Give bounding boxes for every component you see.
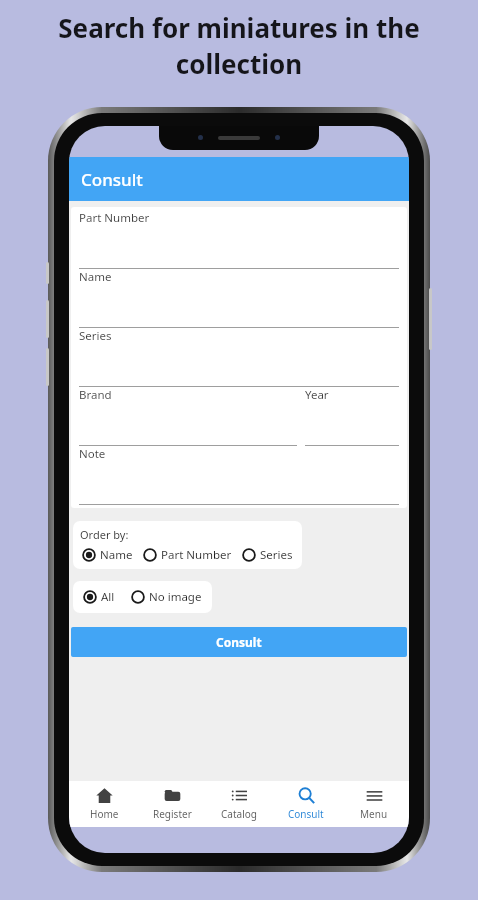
staticText: Home xyxy=(90,807,119,821)
button[interactable]: Catalog xyxy=(207,783,271,825)
staticText: Part Number xyxy=(161,547,232,563)
staticText: Name xyxy=(100,547,133,563)
button[interactable]: Menu xyxy=(342,783,406,825)
staticText: All xyxy=(101,589,115,605)
staticText: Menu xyxy=(360,807,388,821)
staticText: Catalog xyxy=(221,807,257,821)
staticText: Year xyxy=(305,387,329,403)
button[interactable]: Consult xyxy=(274,783,338,825)
staticText: Consult xyxy=(288,807,324,821)
button[interactable]: Register xyxy=(140,783,204,825)
button[interactable]: Part Number xyxy=(141,547,234,563)
staticText: Part Number xyxy=(79,210,150,226)
button[interactable]: No image xyxy=(129,589,204,605)
staticText: Note xyxy=(79,446,106,462)
staticText: Search for miniatures in the collection xyxy=(24,10,454,82)
button[interactable]: All xyxy=(81,589,117,605)
staticText: Series xyxy=(260,547,293,563)
staticText: Order by: xyxy=(80,527,129,542)
staticText: No image xyxy=(149,589,202,605)
staticText: Name xyxy=(79,269,112,285)
staticText: Consult xyxy=(216,634,262,650)
staticText: Consult xyxy=(81,168,143,191)
button[interactable]: Series xyxy=(240,547,295,563)
staticText: Brand xyxy=(79,387,112,403)
button[interactable]: Name xyxy=(80,547,135,563)
staticText: Register xyxy=(153,807,192,821)
button[interactable]: Home xyxy=(72,783,136,825)
staticText: Series xyxy=(79,328,112,344)
button[interactable]: Consult xyxy=(71,627,407,657)
